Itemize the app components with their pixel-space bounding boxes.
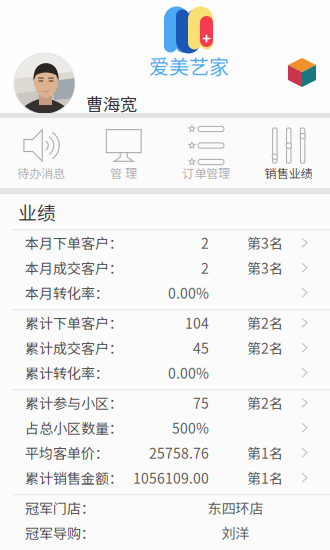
staticText: 45 <box>193 338 209 358</box>
staticText: 冠军导购： <box>25 523 95 543</box>
button[interactable]: 平均客单价： <box>0 440 330 465</box>
staticText: 累计下单客户： <box>25 313 123 333</box>
button[interactable]: 管 理 <box>82 118 165 188</box>
button[interactable]: 累计成交客户： <box>0 335 330 360</box>
staticText: 平均客单价： <box>25 443 109 463</box>
button[interactable]: 待办消息 <box>0 118 82 188</box>
staticText: 累计转化率： <box>25 363 109 383</box>
staticText: 第3名 <box>247 233 283 253</box>
button[interactable]: 订单管理 <box>165 118 247 188</box>
staticText: 500% <box>172 418 209 438</box>
button[interactable]: 本月转化率： <box>0 280 330 305</box>
staticText: 本月下单客户： <box>25 233 123 253</box>
staticText: 管 理 <box>110 164 137 181</box>
staticText: 本月成交客户： <box>25 258 123 278</box>
staticText: 第1名 <box>247 443 283 463</box>
staticText: 待办消息 <box>17 164 65 181</box>
staticText: 75 <box>193 393 209 413</box>
staticText: 第1名 <box>247 468 283 488</box>
button[interactable]: 本月成交客户： <box>0 255 330 280</box>
button[interactable]: 累计下单客户： <box>0 310 330 335</box>
staticText: 订单管理 <box>182 164 230 181</box>
staticText: 曹海宽 <box>86 91 137 116</box>
staticText: 刘洋 <box>221 523 249 543</box>
staticText: 累计参与小区： <box>25 393 123 413</box>
button[interactable]: 累计销售金额： <box>0 465 330 490</box>
staticText: 0.00% <box>168 283 209 303</box>
button[interactable]: 占总小区数量： <box>0 415 330 440</box>
staticText: 业绩 <box>18 198 56 225</box>
button[interactable]: 冠军导购： <box>0 520 330 545</box>
staticText: 0.00% <box>168 363 209 383</box>
staticText: 销售业绩 <box>265 164 313 181</box>
staticText: 104 <box>185 313 209 333</box>
staticText: 第2名 <box>247 313 283 333</box>
staticText: 爱美艺家 <box>149 51 229 80</box>
button[interactable]: 销售业绩 <box>247 118 330 188</box>
staticText: 冠军门店： <box>25 498 95 518</box>
button[interactable]: 本月下单客户： <box>0 230 330 255</box>
button[interactable]: 累计参与小区： <box>0 390 330 415</box>
staticText: 第2名 <box>247 393 283 413</box>
staticText: 占总小区数量： <box>25 418 123 438</box>
staticText: 2 <box>201 233 209 253</box>
staticText: 本月转化率： <box>25 283 109 303</box>
staticText: 第2名 <box>247 338 283 358</box>
staticText: 东四环店 <box>207 498 263 518</box>
staticText: 累计销售金额： <box>25 468 123 488</box>
staticText: 1056109.00 <box>133 468 209 488</box>
staticText: 2 <box>201 258 209 278</box>
staticText: 25758.76 <box>149 443 209 463</box>
staticText: 第3名 <box>247 258 283 278</box>
staticText: 累计成交客户： <box>25 338 123 358</box>
button[interactable]: 累计转化率： <box>0 360 330 385</box>
button[interactable]: 冠军门店： <box>0 495 330 520</box>
